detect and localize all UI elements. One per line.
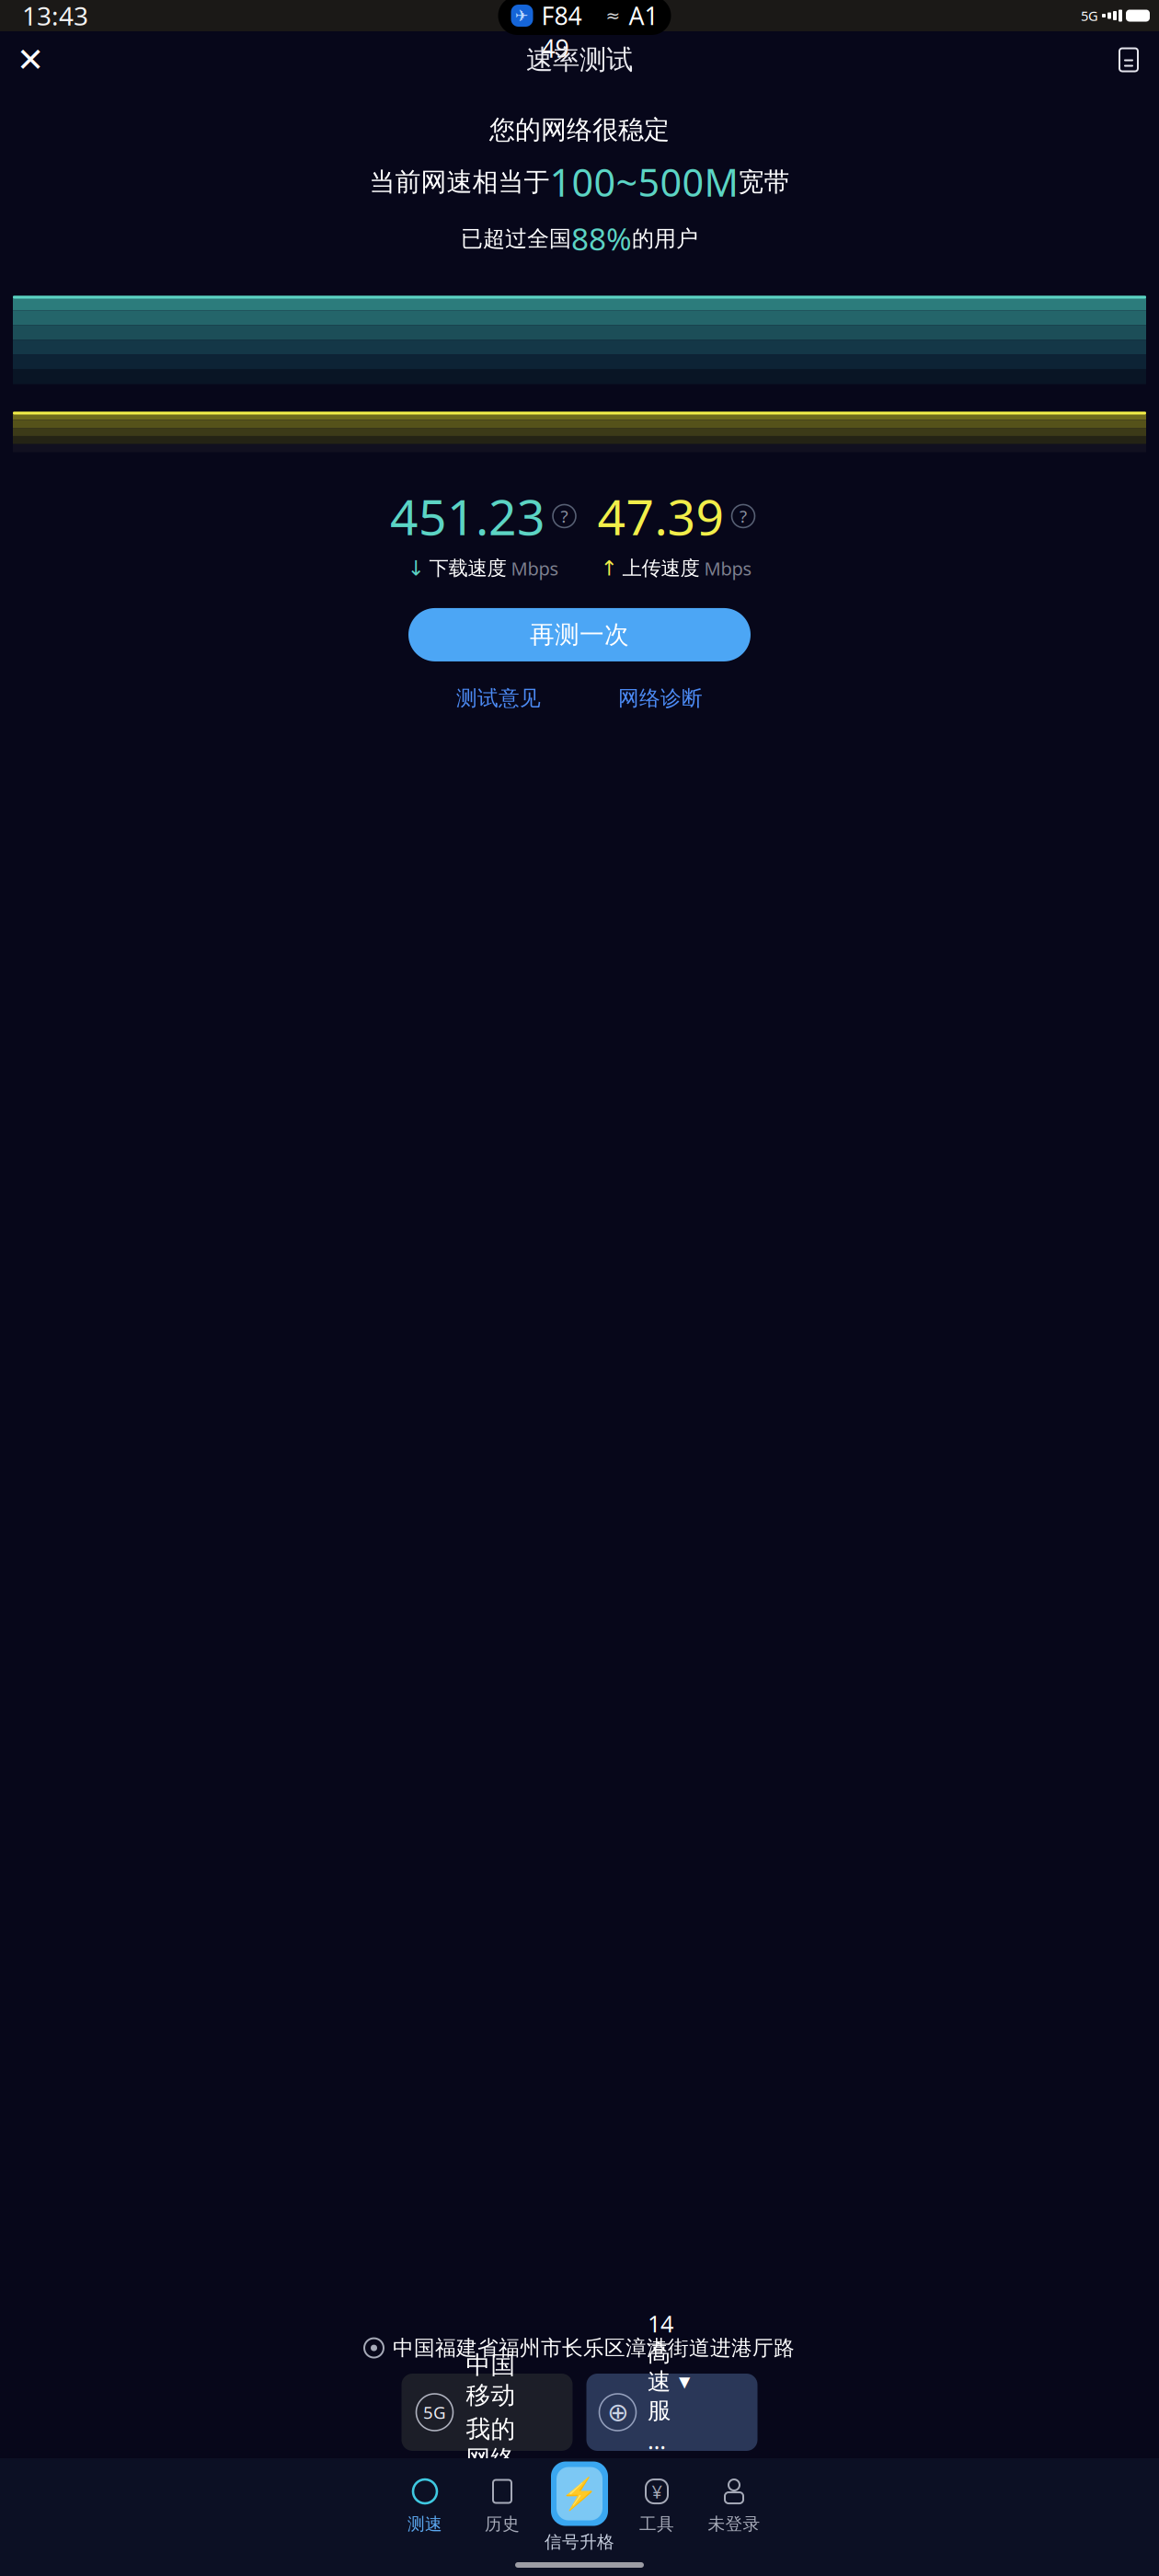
staticText: ⊕ — [607, 2398, 628, 2427]
staticText: 88% — [571, 218, 632, 259]
staticText: 47.39 — [597, 483, 724, 549]
staticText: ? — [740, 505, 747, 528]
staticText: 5G — [1081, 7, 1098, 25]
button[interactable]: Close — [7, 37, 53, 83]
staticText: 当前网速相当于 — [369, 166, 550, 198]
button[interactable]: 历史 — [464, 2478, 541, 2557]
staticText: Mbps — [511, 556, 559, 581]
button[interactable]: ⚡ — [541, 2461, 618, 2573]
staticText: Mbps — [704, 556, 752, 581]
staticText: 的用户 — [632, 225, 698, 252]
button[interactable]: Info — [732, 505, 755, 528]
staticText: ↑ — [600, 556, 618, 580]
button[interactable]: Report — [1106, 37, 1152, 83]
staticText: ✈ — [515, 7, 529, 25]
button[interactable]: Info — [553, 505, 576, 528]
staticText: A1 — [629, 0, 658, 32]
staticText: 上传速度 — [622, 556, 700, 580]
staticText: 我的网络 — [466, 2414, 516, 2474]
button[interactable]: ¥ — [618, 2478, 695, 2557]
button[interactable]: ⊕ — [586, 2374, 757, 2451]
staticText: MF8449 — [541, 0, 582, 64]
staticText: ▼ — [679, 2373, 690, 2390]
staticText: 测试意见 — [456, 685, 541, 711]
staticText: 速率测试 — [526, 43, 633, 76]
button[interactable]: 网络诊断 — [618, 685, 703, 711]
staticText: 工具 — [639, 2513, 674, 2535]
staticText: 再测一次 — [530, 620, 629, 650]
staticText: 历史 — [485, 2513, 520, 2535]
staticText: 5G — [423, 2401, 446, 2424]
staticText: 未登录 — [708, 2513, 760, 2535]
button[interactable]: 未登录 — [695, 2478, 773, 2557]
button[interactable]: 5G — [402, 2374, 573, 2451]
staticText: ↓ — [407, 556, 425, 580]
staticText: 13:43 — [22, 0, 88, 33]
staticText: 中国福建省福州市长乐区漳港街道进港厅路 — [393, 2335, 795, 2361]
staticText: 14高速服… — [648, 2308, 673, 2456]
staticText: 下载速度 — [429, 556, 506, 580]
staticText: 宽带 — [738, 166, 790, 198]
staticText: ? — [561, 505, 568, 528]
button[interactable]: 测试意见 — [456, 685, 541, 711]
staticText: 网络诊断 — [618, 685, 703, 711]
staticText: ¥ — [652, 2479, 662, 2504]
staticText: 中国移动 — [466, 2350, 516, 2410]
staticText: ✕ — [17, 41, 44, 79]
button[interactable]: 再测一次 — [408, 608, 751, 661]
staticText: 测速 — [407, 2513, 442, 2535]
staticText: 100~500M — [550, 157, 738, 207]
staticText: 流畅 — [647, 2459, 670, 2517]
staticText: ⚡ — [560, 2476, 599, 2511]
staticText: 451.23 — [390, 483, 545, 549]
staticText: 您的网络很稳定 — [489, 114, 670, 146]
staticText: 信号升格 — [545, 2531, 614, 2552]
staticText: ≈ — [606, 6, 620, 25]
button[interactable]: 测速 — [386, 2478, 464, 2557]
staticText: 已超过全国 — [461, 225, 571, 252]
